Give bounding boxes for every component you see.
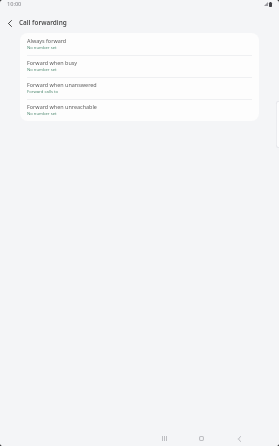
staticText: Forward when unreachable bbox=[27, 103, 97, 110]
button[interactable]: Always forward bbox=[20, 33, 259, 55]
staticText: No number set bbox=[27, 111, 57, 117]
staticText: Always forward bbox=[27, 37, 67, 44]
button[interactable]: Back bbox=[233, 432, 246, 445]
button[interactable]: Recents bbox=[158, 432, 171, 445]
staticText: Forward when busy bbox=[27, 59, 78, 66]
staticText: 10:00 bbox=[7, 0, 22, 8]
button[interactable]: Forward when unreachable bbox=[20, 99, 259, 121]
staticText: No number set bbox=[27, 45, 57, 51]
button[interactable]: Forward when unanswered bbox=[20, 77, 259, 99]
button[interactable]: Home bbox=[195, 432, 208, 445]
staticText: No number set bbox=[27, 67, 57, 73]
button[interactable]: Navigate up bbox=[0, 11, 19, 33]
button[interactable]: Forward when busy bbox=[20, 55, 259, 77]
staticText: Forward calls to bbox=[27, 89, 59, 95]
staticText: Call forwarding bbox=[19, 18, 67, 27]
staticText: Forward when unanswered bbox=[27, 81, 97, 88]
